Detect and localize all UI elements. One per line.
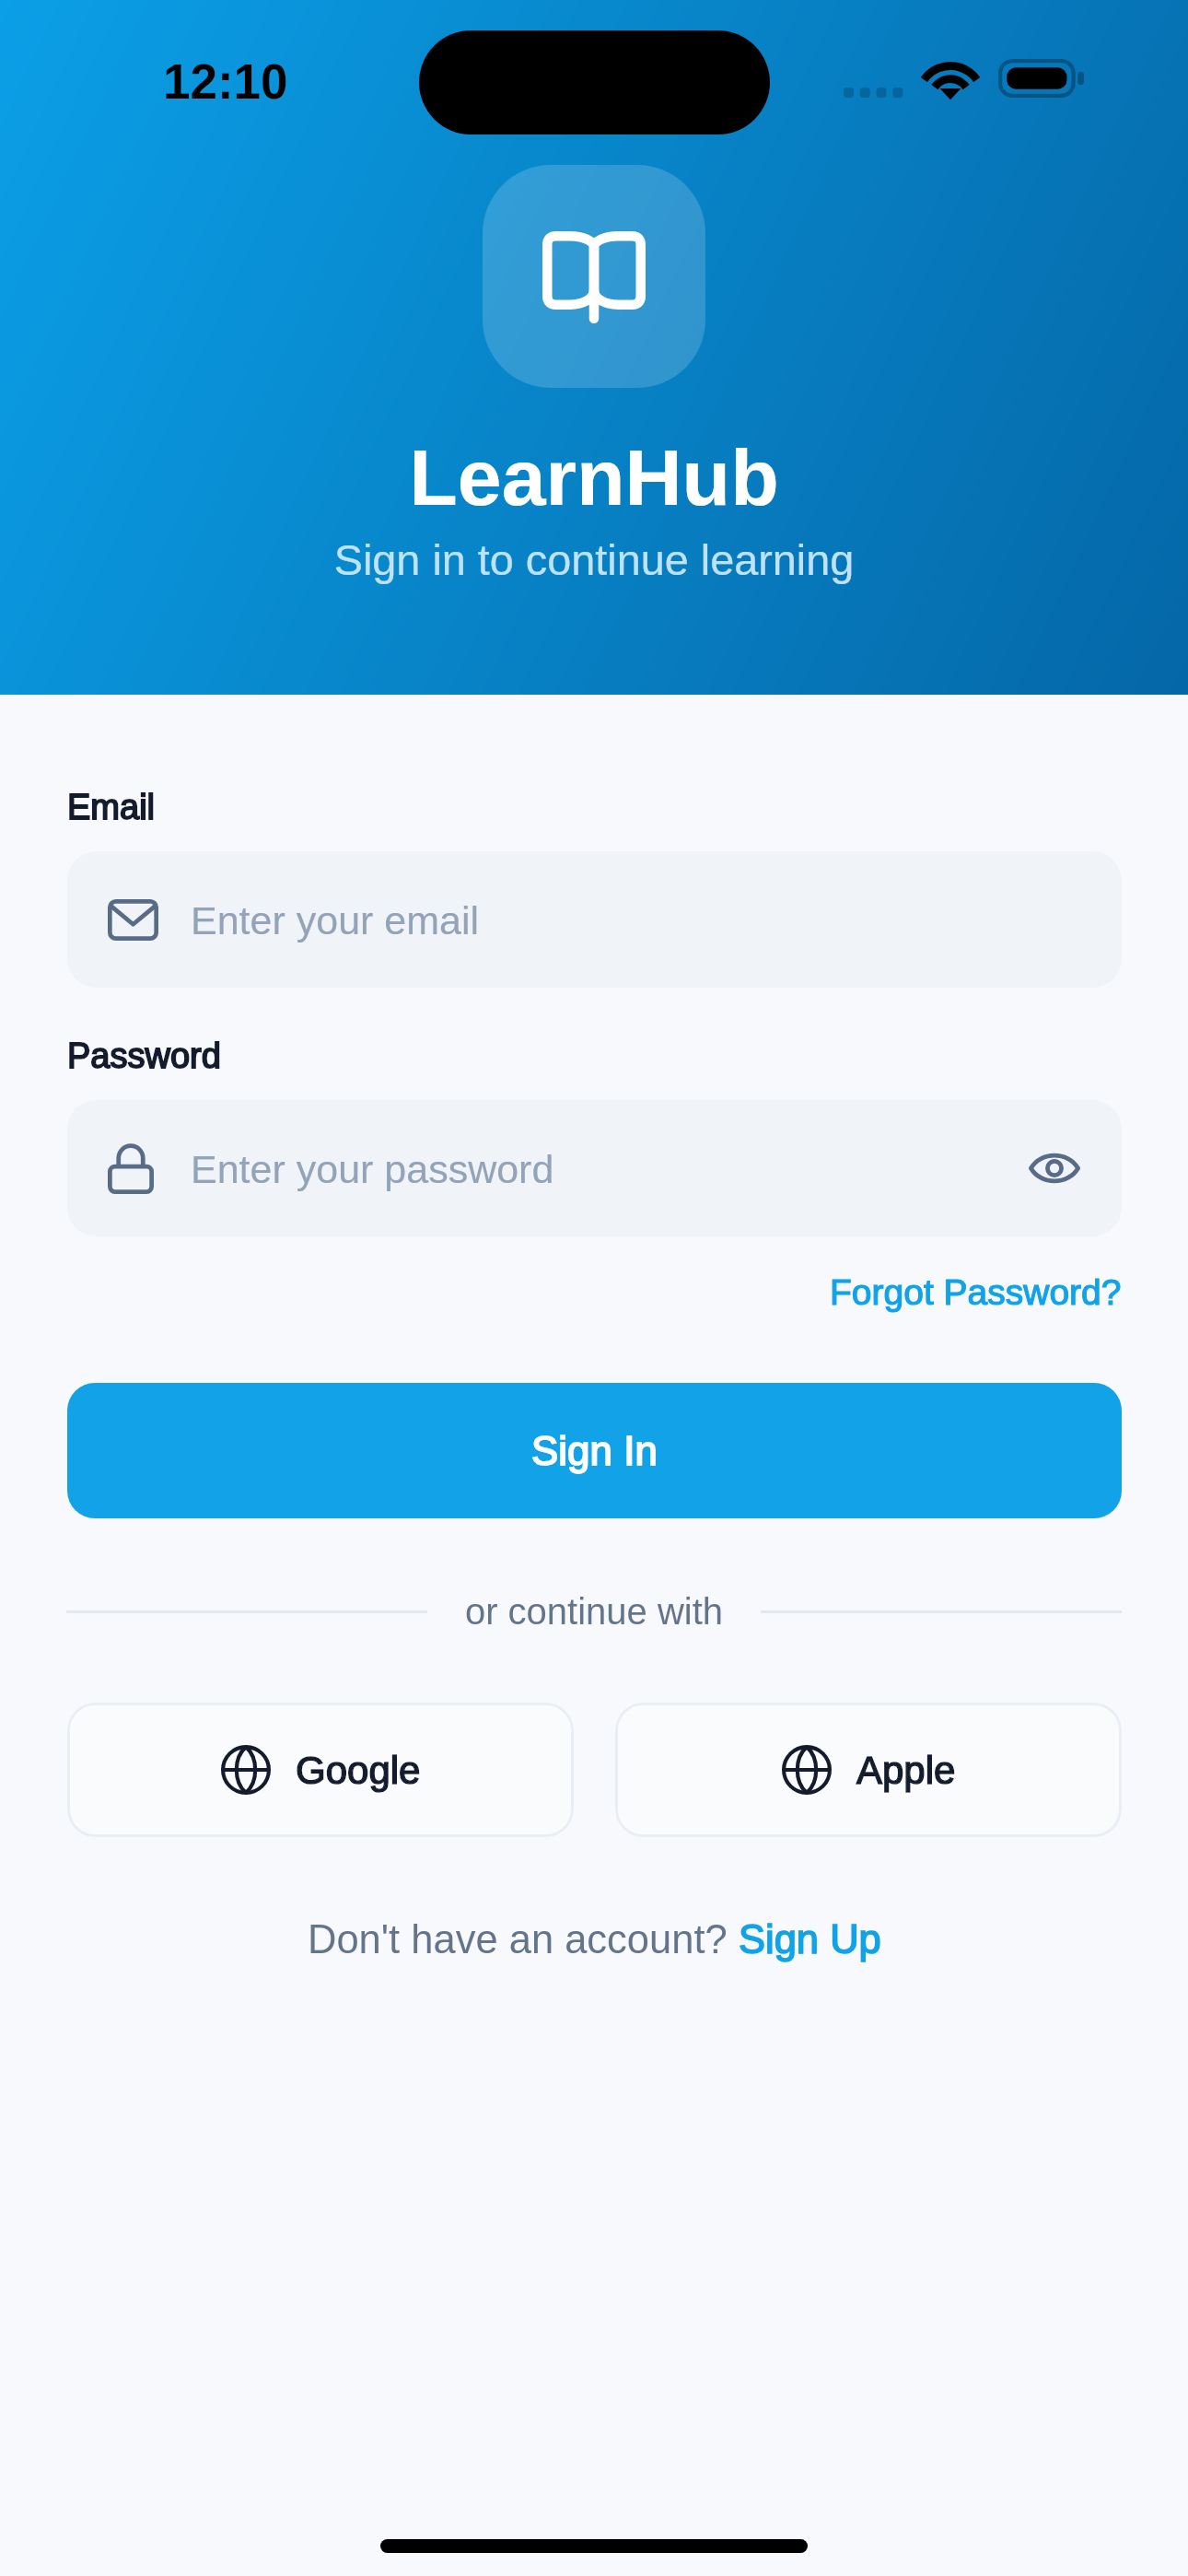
button[interactable]: Don't have an account? [0, 1911, 1188, 1968]
staticText: Email [67, 788, 156, 826]
button[interactable]: Forgot Password? [810, 1262, 1122, 1323]
button[interactable]: Google [67, 1703, 574, 1837]
staticText: or continue with [0, 1591, 1188, 1633]
staticText: Apple [856, 1749, 956, 1792]
staticText: Sign Up [739, 1917, 881, 1962]
staticText: Forgot Password? [830, 1272, 1122, 1313]
staticText: LearnHub [0, 433, 1188, 521]
staticText: Apple [856, 1749, 956, 1792]
button[interactable]: Apple [615, 1703, 1122, 1837]
button[interactable]: Enter your password [67, 1100, 1122, 1236]
staticText: Google [296, 1749, 421, 1792]
staticText: Forgot Password? [830, 1272, 1122, 1313]
other: Show password [1029, 1149, 1080, 1188]
button[interactable]: Show password [1013, 1127, 1096, 1210]
staticText: Don't have an account? [308, 1917, 739, 1962]
staticText: Email [67, 788, 156, 826]
staticText: Sign Up [739, 1917, 881, 1962]
staticText: Sign In [531, 1428, 658, 1473]
staticText: Password [67, 1036, 221, 1075]
staticText: Enter your email [191, 898, 480, 943]
staticText: Sign In [531, 1428, 658, 1473]
button[interactable]: Sign In [67, 1383, 1122, 1518]
button[interactable]: Enter your email [67, 851, 1122, 988]
staticText: Password [67, 1036, 221, 1075]
staticText: Sign in to continue learning [0, 536, 1188, 584]
staticText: Google [296, 1749, 421, 1792]
staticText: 12:10 [163, 54, 288, 109]
staticText: Enter your password [191, 1147, 554, 1191]
